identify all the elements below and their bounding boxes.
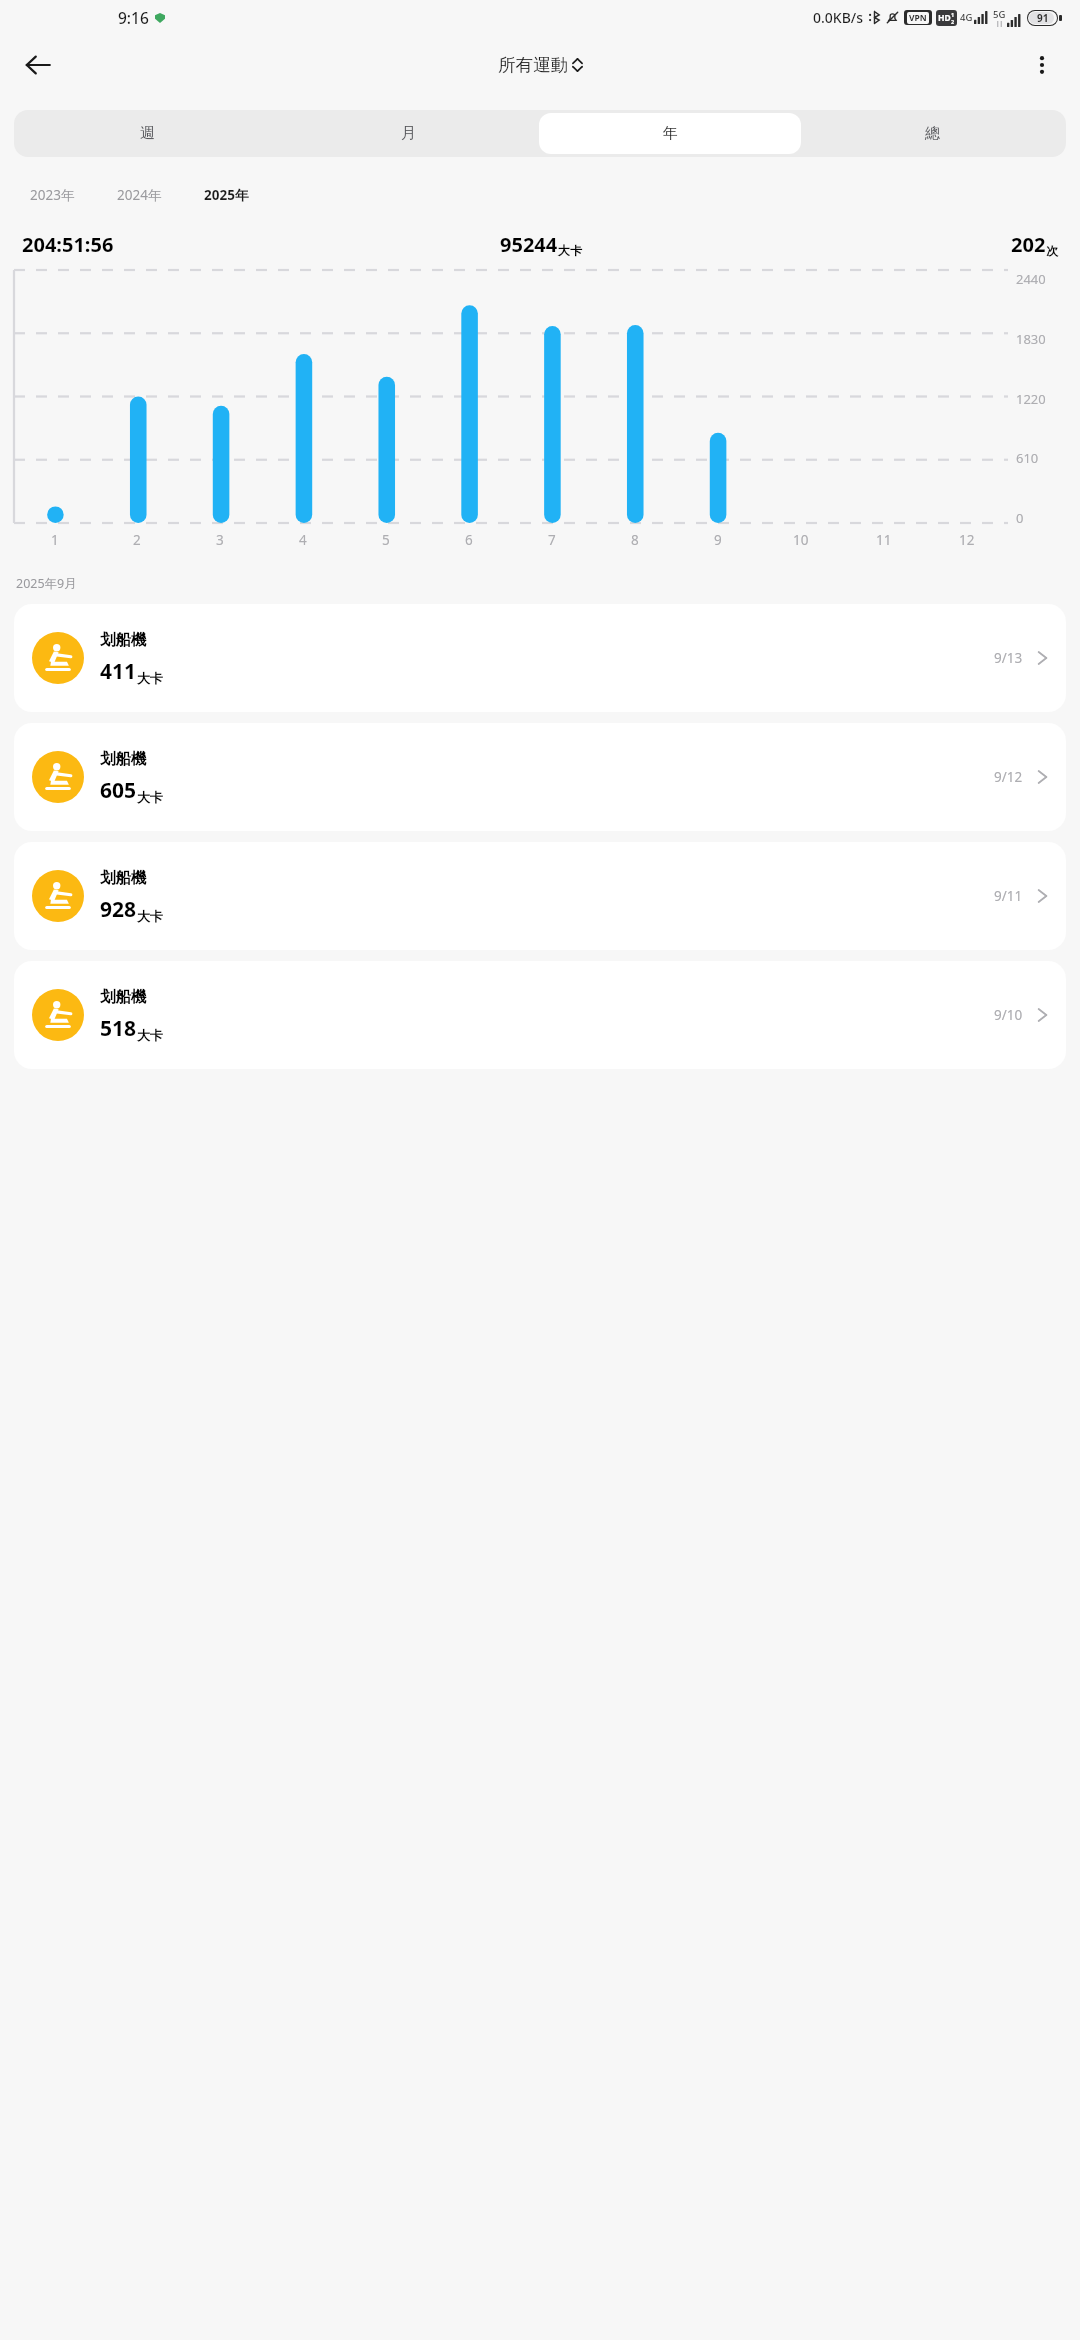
- staticText: 95244: [500, 231, 558, 258]
- staticText: 4: [299, 531, 307, 549]
- staticText: 2440: [1016, 270, 1046, 284]
- staticText: 大卡: [137, 670, 163, 686]
- staticText: 9/13: [994, 649, 1023, 667]
- button[interactable]: Back: [10, 37, 66, 93]
- staticText: 91: [1037, 11, 1049, 25]
- staticText: 202: [1011, 231, 1046, 258]
- staticText: 2: [951, 18, 955, 25]
- staticText: 划船機: [100, 868, 147, 888]
- staticText: 1830: [1016, 330, 1046, 344]
- staticText: 7: [548, 531, 556, 549]
- staticText: 週: [140, 124, 155, 143]
- staticText: 610: [1016, 449, 1039, 463]
- staticText: VPN: [909, 12, 927, 24]
- staticText: 年: [663, 124, 678, 143]
- button[interactable]: 划船機: [14, 723, 1066, 831]
- button[interactable]: More options: [1014, 37, 1070, 93]
- staticText: 5G: [993, 8, 1006, 21]
- staticText: 2025年9月: [16, 575, 77, 592]
- staticText: 大卡: [137, 908, 163, 924]
- staticText: 0: [1016, 509, 1024, 523]
- staticText: 518: [100, 1014, 137, 1043]
- button[interactable]: 2023年: [22, 183, 83, 207]
- staticText: 10: [793, 531, 809, 549]
- staticText: 928: [100, 895, 137, 924]
- staticText: HD: [938, 12, 951, 24]
- staticText: 大卡: [558, 243, 582, 258]
- staticText: 12: [959, 531, 975, 549]
- button[interactable]: 2025年: [196, 183, 257, 207]
- staticText: 2025年: [204, 186, 249, 204]
- staticText: 1220: [1016, 390, 1046, 404]
- staticText: 次: [1046, 243, 1058, 258]
- staticText: 8: [631, 531, 639, 549]
- staticText: 9/10: [994, 1006, 1023, 1024]
- button[interactable]: 划船機: [14, 961, 1066, 1069]
- staticText: 1: [951, 11, 955, 18]
- button[interactable]: 總: [801, 113, 1063, 154]
- staticText: 0.0KB/s: [813, 8, 864, 27]
- staticText: 大卡: [137, 789, 163, 805]
- button[interactable]: 年: [539, 113, 801, 154]
- button[interactable]: 2024年: [109, 183, 170, 207]
- staticText: 204:51:56: [22, 231, 114, 258]
- staticText: 2024年: [117, 186, 162, 204]
- button[interactable]: 划船機: [14, 604, 1066, 712]
- staticText: 所有運動: [498, 54, 568, 76]
- staticText: 划船機: [100, 749, 147, 769]
- staticText: 9: [714, 531, 722, 549]
- staticText: 5: [382, 531, 390, 549]
- staticText: 605: [100, 776, 137, 805]
- staticText: 11: [876, 531, 892, 549]
- staticText: 3: [216, 531, 224, 549]
- staticText: 9/11: [994, 887, 1023, 905]
- staticText: 划船機: [100, 630, 147, 650]
- staticText: 大卡: [137, 1027, 163, 1043]
- staticText: 1: [51, 531, 59, 549]
- button[interactable]: 所有運動: [492, 50, 589, 80]
- staticText: 9:16: [118, 7, 149, 28]
- button[interactable]: 週: [17, 113, 278, 154]
- staticText: 6: [465, 531, 473, 549]
- staticText: 月: [401, 124, 416, 143]
- staticText: 2023年: [30, 186, 75, 204]
- staticText: 總: [925, 124, 940, 143]
- staticText: 9/12: [994, 768, 1023, 786]
- button[interactable]: 月: [278, 113, 539, 154]
- button[interactable]: 划船機: [14, 842, 1066, 950]
- staticText: 411: [100, 657, 137, 686]
- staticText: 划船機: [100, 987, 147, 1007]
- staticText: 2: [133, 531, 141, 549]
- staticText: 4G: [960, 11, 973, 24]
